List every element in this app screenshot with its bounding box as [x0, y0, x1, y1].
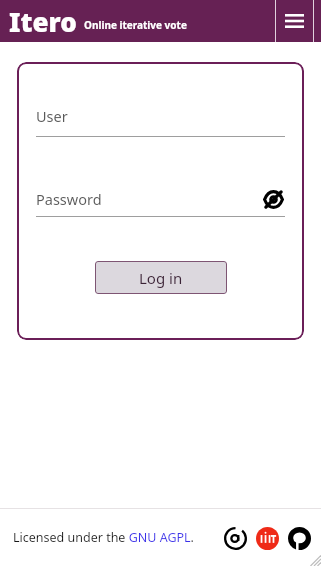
button[interactable]: GitHub repository	[286, 525, 312, 551]
button[interactable]: Password	[36, 189, 261, 209]
button[interactable]: Licensed under the GNU AGPL.	[13, 529, 194, 546]
button[interactable]: Log in	[95, 261, 227, 294]
button[interactable]: Show password	[261, 187, 285, 211]
staticText: Itero	[9, 4, 77, 39]
staticText: Log in	[139, 268, 183, 288]
button[interactable]: Menu	[276, 0, 313, 42]
button[interactable]: Contact by email	[222, 525, 248, 551]
staticText: Password	[36, 189, 102, 209]
staticText: Online iterative vote	[84, 18, 187, 32]
button[interactable]: User	[36, 106, 285, 137]
button[interactable]: IRIT website	[254, 525, 280, 551]
staticText: User	[36, 106, 68, 126]
